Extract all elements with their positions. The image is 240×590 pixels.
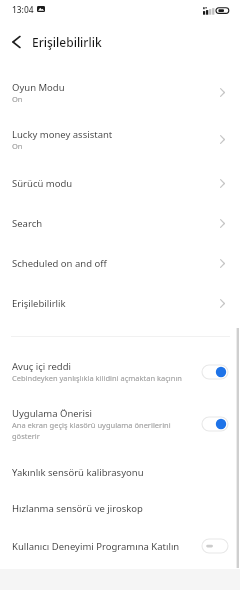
staticText: Avuç içi reddi bbox=[12, 360, 71, 373]
button[interactable]: Erişilebilirlik bbox=[0, 283, 240, 323]
button[interactable]: Switch off bbox=[202, 539, 228, 553]
button[interactable]: Avuç içi reddi bbox=[0, 350, 240, 393]
button[interactable]: Kullanıcı Deneyimi Programına Katılın bbox=[0, 526, 240, 566]
staticText: Cebindeyken yanlışlıkla kilidini açmakta… bbox=[12, 373, 182, 383]
staticText: Kullanıcı Deneyimi Programına Katılın bbox=[12, 540, 180, 553]
button[interactable]: Lucky money assistant bbox=[0, 116, 240, 163]
staticText: Hızlanma sensörü ve jiroskop bbox=[12, 502, 143, 515]
staticText: Sürücü modu bbox=[12, 177, 73, 190]
button[interactable]: Scheduled on and off bbox=[0, 243, 240, 283]
button[interactable]: Switch on bbox=[202, 365, 228, 379]
staticText: Erişilebilirlik bbox=[12, 297, 66, 310]
staticText: Lucky money assistant bbox=[12, 128, 113, 141]
other: Signal and battery status bbox=[0, 0, 240, 18]
staticText: Search bbox=[12, 217, 43, 230]
staticText: Erişilebilirlik bbox=[32, 34, 102, 50]
staticText: Scheduled on and off bbox=[12, 257, 107, 270]
staticText: Uygulama Önerisi bbox=[12, 407, 92, 420]
button[interactable]: Search bbox=[0, 203, 240, 243]
staticText: Ana ekran geçiş klasörü uygulama önerile… bbox=[12, 420, 192, 441]
button[interactable]: Back bbox=[0, 18, 32, 65]
staticText: On bbox=[12, 94, 23, 104]
staticText: Oyun Modu bbox=[12, 81, 65, 94]
staticText: On bbox=[12, 141, 23, 151]
button[interactable]: Uygulama Önerisi bbox=[0, 393, 240, 454]
button[interactable]: Hızlanma sensörü ve jiroskop bbox=[0, 490, 240, 526]
button[interactable]: Oyun Modu bbox=[0, 69, 240, 116]
button[interactable]: Switch on bbox=[202, 417, 228, 431]
staticText: 13:04 bbox=[12, 4, 34, 15]
button[interactable]: Sürücü modu bbox=[0, 163, 240, 203]
button[interactable]: Yakınlık sensörü kalibrasyonu bbox=[0, 454, 240, 490]
staticText: Yakınlık sensörü kalibrasyonu bbox=[12, 466, 144, 479]
